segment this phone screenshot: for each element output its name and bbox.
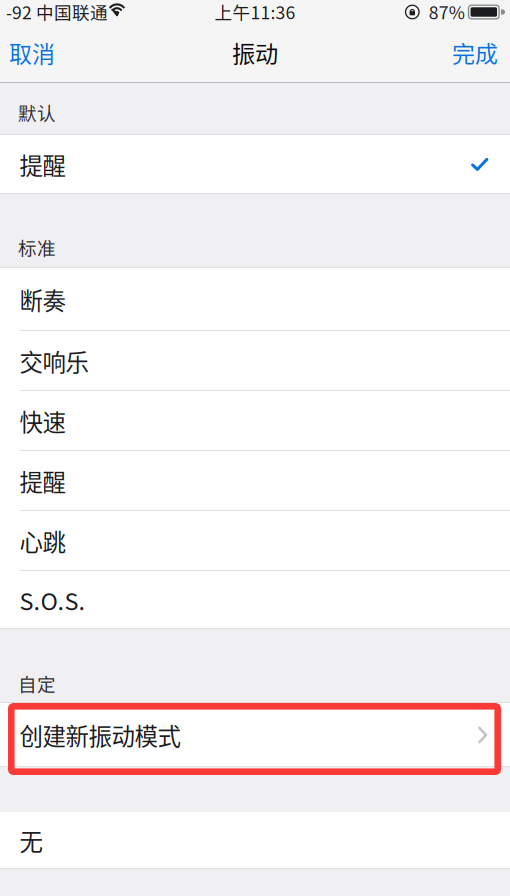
staticText: -92 中国联通: [6, 0, 108, 24]
button[interactable]: 断奏: [0, 268, 510, 331]
button[interactable]: S.O.S.: [0, 571, 510, 629]
staticText: 交响乐: [19, 344, 88, 378]
button[interactable]: 取消: [0, 31, 73, 78]
staticText: 断奏: [19, 282, 65, 316]
button[interactable]: 心跳: [0, 511, 510, 571]
button[interactable]: 无: [0, 812, 510, 869]
staticText: 快速: [19, 404, 65, 438]
staticText: S.O.S.: [19, 583, 85, 617]
button[interactable]: 提醒: [0, 135, 510, 194]
button[interactable]: 完成: [434, 31, 510, 78]
staticText: 取消: [9, 36, 55, 69]
staticText: 无: [19, 823, 42, 857]
staticText: 心跳: [19, 524, 65, 558]
staticText: 自定: [18, 670, 56, 697]
staticText: 提醒: [19, 464, 65, 498]
staticText: 完成: [452, 36, 498, 69]
staticText: 标准: [18, 234, 56, 261]
staticText: 振动: [232, 36, 278, 69]
button[interactable]: 创建新振动模式: [0, 703, 510, 767]
button[interactable]: 快速: [0, 391, 510, 451]
button[interactable]: 提醒: [0, 451, 510, 511]
staticText: 创建新振动模式: [19, 718, 180, 752]
staticText: 提醒: [19, 147, 65, 181]
staticText: 87%: [429, 0, 465, 24]
staticText: 上午11:36: [214, 0, 295, 24]
staticText: 默认: [18, 99, 56, 126]
button[interactable]: 交响乐: [0, 331, 510, 391]
